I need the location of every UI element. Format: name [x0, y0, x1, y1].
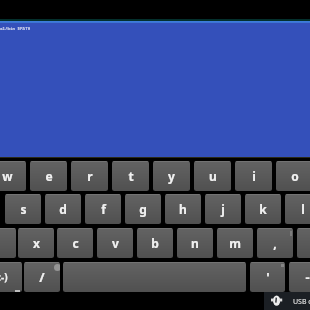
staticText: '	[266, 268, 270, 286]
staticText: s	[20, 201, 27, 217]
button[interactable]: m	[217, 228, 253, 258]
button[interactable]: -	[289, 262, 310, 292]
staticText: n	[191, 235, 199, 251]
button[interactable]: d	[45, 194, 81, 224]
button[interactable]: ,	[257, 228, 293, 258]
staticText: o	[291, 168, 299, 184]
other: USB debugging connected	[271, 294, 282, 306]
button[interactable]: x	[18, 228, 54, 258]
button[interactable]: i	[235, 161, 272, 191]
staticText: /	[39, 268, 45, 286]
staticText: i	[252, 168, 256, 184]
button[interactable]: v	[97, 228, 133, 258]
staticText: g	[139, 201, 147, 217]
button[interactable]: delete key	[297, 228, 310, 258]
button[interactable]: l	[285, 194, 310, 224]
button[interactable]: h	[165, 194, 201, 224]
button[interactable]: r	[71, 161, 108, 191]
staticText: h	[179, 201, 187, 217]
button[interactable]: g	[125, 194, 161, 224]
button[interactable]: o	[276, 161, 310, 191]
button[interactable]: :-)	[0, 262, 22, 292]
staticText: -	[305, 268, 310, 286]
staticText: al/bin $PATH	[0, 26, 31, 32]
staticText: v	[112, 235, 119, 251]
staticText: u	[209, 168, 217, 184]
staticText: b	[151, 235, 159, 251]
staticText: y	[168, 168, 175, 184]
staticText: e	[45, 168, 53, 184]
button[interactable]: u	[194, 161, 231, 191]
staticText: x	[33, 235, 40, 251]
button[interactable]: k	[245, 194, 281, 224]
button[interactable]: s	[5, 194, 41, 224]
staticText: l	[301, 201, 305, 217]
staticText: w	[2, 168, 13, 184]
staticText: r	[87, 168, 93, 184]
staticText: ,	[273, 235, 277, 251]
button[interactable]: j	[205, 194, 241, 224]
button[interactable]: y	[153, 161, 190, 191]
button[interactable]: c	[57, 228, 93, 258]
button[interactable]: b	[137, 228, 173, 258]
button[interactable]: f	[85, 194, 121, 224]
button[interactable]: space key	[63, 262, 246, 292]
button[interactable]: '	[250, 262, 285, 292]
staticText: USB d	[293, 297, 310, 307]
button[interactable]: w	[0, 161, 26, 191]
button[interactable]: /	[24, 262, 60, 292]
button[interactable]: e	[30, 161, 67, 191]
staticText: t	[128, 168, 134, 184]
staticText: :-)	[0, 270, 8, 284]
staticText: d	[59, 201, 67, 217]
staticText: j	[221, 201, 225, 217]
button[interactable]: shift key	[0, 228, 16, 258]
button[interactable]: n	[177, 228, 213, 258]
staticText: c	[72, 235, 79, 251]
staticText: m	[229, 235, 241, 251]
staticText: f	[101, 201, 106, 217]
button[interactable]: t	[112, 161, 149, 191]
staticText: k	[259, 201, 267, 217]
